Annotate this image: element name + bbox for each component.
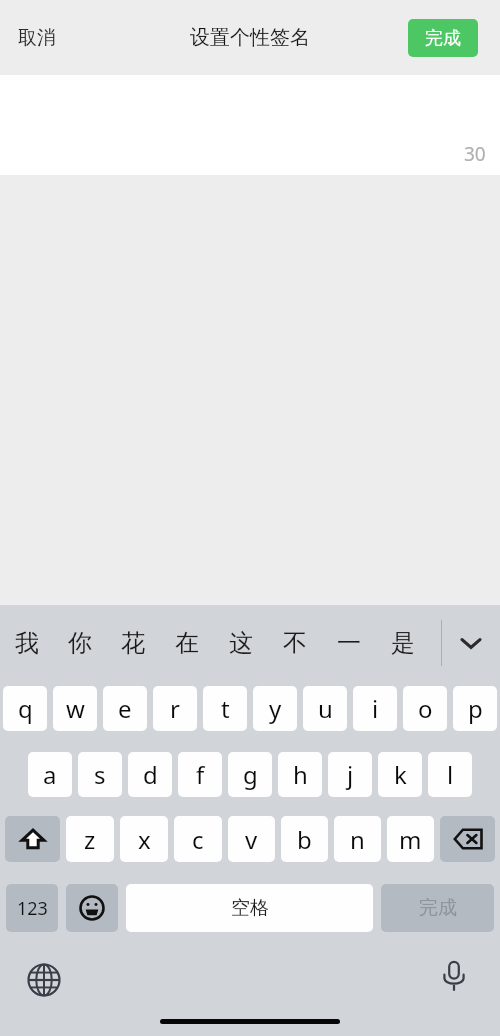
button[interactable]: i	[353, 686, 397, 731]
staticText: a	[43, 758, 57, 791]
staticText: s	[94, 758, 106, 791]
staticText: l	[447, 758, 454, 791]
button[interactable]: d	[128, 752, 172, 797]
button[interactable]: 是	[376, 605, 430, 681]
button[interactable]: 一	[322, 605, 376, 681]
staticText: j	[347, 758, 354, 791]
staticText: 30	[464, 141, 486, 167]
staticText: g	[243, 758, 258, 791]
button[interactable]: Emoji	[66, 884, 118, 932]
staticText: i	[372, 692, 379, 725]
button[interactable]: Shift	[5, 816, 60, 862]
button[interactable]: Backspace	[440, 816, 495, 862]
staticText: e	[118, 692, 132, 725]
button[interactable]: 30	[0, 75, 500, 175]
button[interactable]: 完成	[381, 884, 494, 932]
button[interactable]: b	[281, 816, 328, 862]
staticText: 设置个性签名	[190, 25, 310, 50]
button[interactable]: 完成	[408, 19, 478, 57]
button[interactable]: c	[174, 816, 222, 862]
staticText: 你	[68, 628, 92, 658]
staticText: r	[170, 692, 180, 725]
staticText: 是	[391, 628, 415, 658]
button[interactable]: p	[453, 686, 497, 731]
staticText: 完成	[425, 27, 461, 50]
button[interactable]: q	[3, 686, 47, 731]
staticText: n	[350, 823, 365, 856]
staticText: 不	[283, 628, 307, 658]
staticText: 我	[15, 628, 39, 658]
staticText: x	[138, 823, 151, 856]
button[interactable]: Collapse keyboard	[442, 605, 500, 681]
staticText: 空格	[231, 896, 269, 920]
button[interactable]: Voice input	[432, 954, 476, 998]
staticText: y	[269, 692, 282, 725]
button[interactable]: o	[403, 686, 447, 731]
staticText: 123	[17, 896, 48, 921]
staticText: b	[297, 823, 312, 856]
button[interactable]: j	[328, 752, 372, 797]
staticText: d	[143, 758, 158, 791]
button[interactable]: e	[103, 686, 147, 731]
staticText: 花	[121, 628, 145, 658]
button[interactable]: n	[334, 816, 381, 862]
staticText: k	[394, 758, 407, 791]
staticText: p	[468, 692, 483, 725]
button[interactable]: m	[387, 816, 434, 862]
button[interactable]: 我	[0, 605, 53, 681]
button[interactable]: s	[78, 752, 122, 797]
button[interactable]: z	[66, 816, 114, 862]
button[interactable]: 这	[214, 605, 268, 681]
button[interactable]: l	[428, 752, 472, 797]
button[interactable]: f	[178, 752, 222, 797]
button[interactable]: r	[153, 686, 197, 731]
staticText: z	[84, 823, 96, 856]
button[interactable]: v	[228, 816, 275, 862]
staticText: 完成	[419, 896, 457, 920]
button[interactable]: u	[303, 686, 347, 731]
staticText: q	[18, 692, 33, 725]
staticText: m	[399, 823, 422, 856]
button[interactable]: h	[278, 752, 322, 797]
button[interactable]: 在	[160, 605, 214, 681]
staticText: 在	[175, 628, 199, 658]
staticText: o	[418, 692, 433, 725]
button[interactable]: Change keyboard	[22, 958, 66, 1002]
button[interactable]: 取消	[8, 18, 66, 58]
staticText: h	[293, 758, 308, 791]
button[interactable]: k	[378, 752, 422, 797]
button[interactable]: 你	[53, 605, 106, 681]
staticText: u	[318, 692, 333, 725]
staticText: w	[66, 692, 85, 725]
button[interactable]: 空格	[126, 884, 373, 932]
button[interactable]: 123	[6, 884, 58, 932]
button[interactable]: g	[228, 752, 272, 797]
staticText: f	[196, 758, 205, 791]
staticText: 这	[229, 628, 253, 658]
staticText: 取消	[18, 26, 56, 50]
button[interactable]: x	[120, 816, 168, 862]
staticText: c	[192, 823, 204, 856]
button[interactable]: y	[253, 686, 297, 731]
button[interactable]: a	[28, 752, 72, 797]
button[interactable]: w	[53, 686, 97, 731]
staticText: 一	[337, 628, 361, 658]
button[interactable]: 花	[106, 605, 160, 681]
staticText: t	[221, 692, 230, 725]
button[interactable]: t	[203, 686, 247, 731]
button[interactable]: 不	[268, 605, 322, 681]
staticText: v	[245, 823, 258, 856]
